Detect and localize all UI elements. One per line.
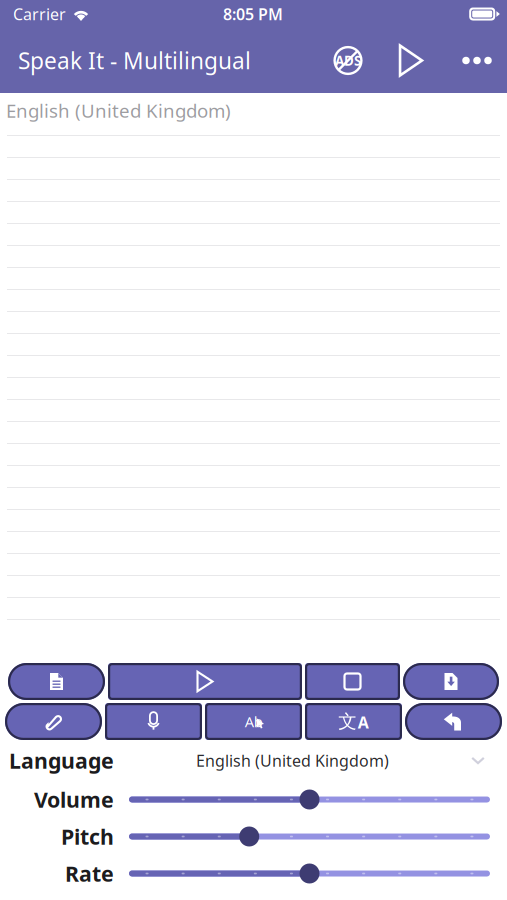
staticText: A (358, 712, 369, 733)
button[interactable]: New document (8, 663, 105, 700)
button[interactable]: Speak (375, 35, 447, 85)
staticText: ADS (335, 52, 361, 69)
button[interactable]: Select text (205, 703, 302, 740)
staticText: Volume (34, 785, 114, 814)
staticText: 8:05 PM (223, 3, 283, 25)
staticText: Pitch (61, 822, 114, 851)
button[interactable]: Attach (5, 703, 102, 740)
staticText: Rate (65, 859, 114, 888)
button[interactable]: More options (447, 35, 507, 85)
staticText: Speak It - Multilingual (18, 45, 251, 75)
staticText: Language (9, 746, 114, 775)
button[interactable]: Record (105, 703, 202, 740)
button[interactable]: Save (403, 663, 499, 700)
staticText: Carrier (13, 3, 66, 25)
button[interactable]: Stop (305, 663, 400, 700)
staticText: 文 (338, 710, 357, 733)
staticText: English (United Kingdom) (196, 750, 389, 771)
staticText: English (United Kingdom) (6, 98, 231, 123)
button[interactable]: Speak (108, 663, 302, 700)
button[interactable]: Translate (305, 703, 402, 740)
button[interactable]: Undo (405, 703, 502, 740)
staticText: Ab (245, 712, 263, 731)
button[interactable]: Remove ads (321, 35, 375, 85)
button[interactable]: Language (0, 740, 507, 781)
